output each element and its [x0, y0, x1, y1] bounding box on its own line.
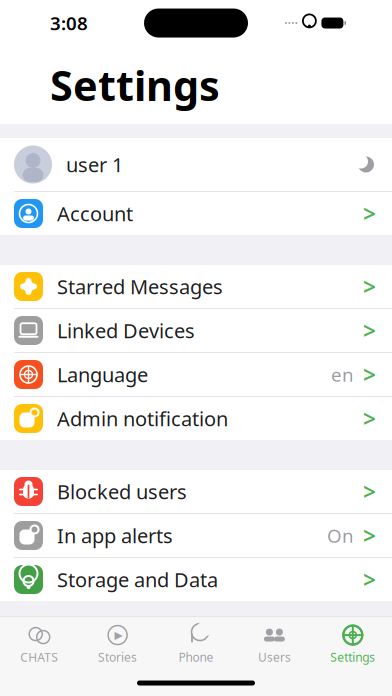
staticText: Settings [50, 58, 220, 112]
staticText: Stories [98, 649, 137, 665]
staticText: Admin notification [57, 405, 228, 432]
button[interactable]: Phone [157, 617, 235, 670]
button[interactable]: Admin notification [0, 397, 392, 440]
staticText: Linked Devices [57, 317, 195, 344]
staticText: Settings [330, 649, 375, 665]
staticText: user 1 [66, 151, 123, 178]
staticText: Blocked users [57, 478, 187, 505]
staticText: > [363, 271, 376, 301]
staticText: Storage and Data [57, 566, 218, 593]
staticText: > [363, 359, 376, 389]
staticText: Starred Messages [57, 273, 223, 300]
button[interactable]: Starred Messages [0, 265, 392, 309]
staticText: Language [57, 361, 148, 388]
staticText: > [363, 564, 376, 594]
button[interactable]: Blocked users [0, 470, 392, 514]
staticText: 3:08 [50, 11, 88, 35]
button[interactable]: Storage and Data [0, 558, 392, 601]
button[interactable]: Settings [314, 617, 392, 670]
button[interactable]: Language [0, 353, 392, 397]
button[interactable]: ▶ [78, 617, 157, 670]
staticText: In app alerts [57, 522, 173, 549]
staticText: > [363, 403, 376, 433]
staticText: CHATS [20, 649, 58, 665]
staticText: > [363, 520, 376, 550]
staticText: Account [57, 200, 133, 227]
staticText: > [363, 315, 376, 345]
button[interactable]: Linked Devices [0, 309, 392, 353]
staticText: > [363, 198, 376, 228]
staticText: On [327, 523, 354, 548]
staticText: > [363, 476, 376, 506]
staticText: Users [258, 649, 291, 665]
staticText: en [331, 362, 354, 387]
button[interactable]: Account [0, 192, 392, 235]
button[interactable]: CHATS [0, 617, 78, 670]
staticText: Phone [178, 649, 213, 665]
button[interactable]: user 1 [0, 138, 392, 192]
staticText: ▶ [115, 629, 123, 641]
button[interactable]: Users [235, 617, 314, 670]
button[interactable]: In app alerts [0, 514, 392, 558]
